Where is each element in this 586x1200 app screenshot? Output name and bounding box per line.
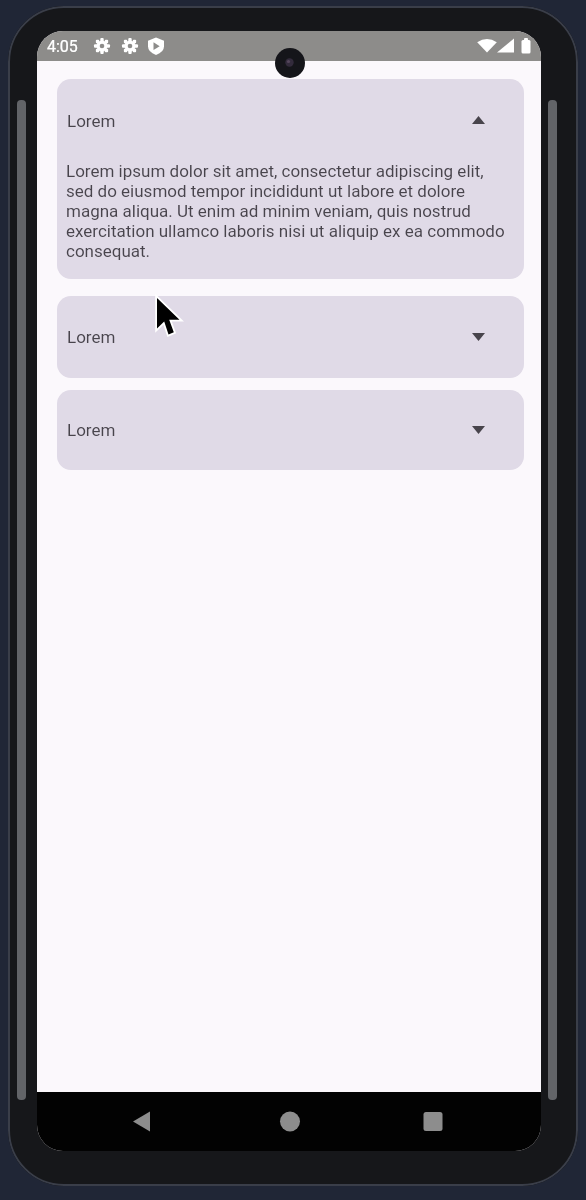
- staticText: Lorem ipsum dolor sit amet, consectetur …: [66, 161, 505, 261]
- button[interactable]: [409, 1097, 457, 1145]
- staticText: Lorem: [67, 111, 116, 131]
- button[interactable]: Lorem: [57, 79, 524, 279]
- staticText: 4:05: [47, 37, 78, 56]
- button[interactable]: [118, 1097, 166, 1145]
- button[interactable]: [266, 1097, 314, 1145]
- button[interactable]: Lorem: [57, 390, 524, 470]
- staticText: Lorem: [67, 420, 116, 440]
- button[interactable]: Lorem: [57, 296, 524, 378]
- staticText: Lorem: [67, 327, 116, 347]
